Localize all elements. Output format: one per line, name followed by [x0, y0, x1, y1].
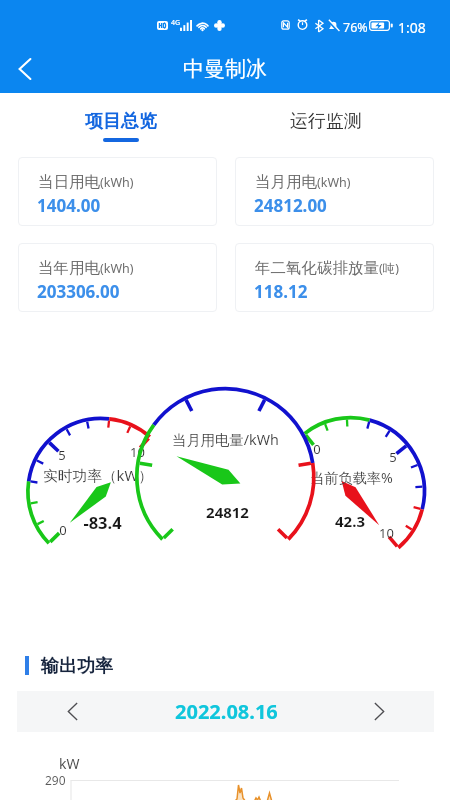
- staticText: 0: [59, 521, 67, 539]
- staticText: 24812.00: [254, 194, 327, 217]
- staticText: (kWh): [317, 174, 351, 191]
- staticText: 当日用电: [38, 172, 100, 192]
- staticText: (吨): [379, 260, 400, 277]
- button[interactable]: Back: [5, 49, 45, 89]
- staticText: 当年用电: [38, 258, 100, 278]
- staticText: 当月用电量/kWh: [172, 430, 279, 450]
- button[interactable]: Previous day: [17, 691, 127, 732]
- staticText: 输出功率: [41, 655, 113, 678]
- staticText: 76%: [343, 19, 368, 36]
- staticText: 10: [130, 443, 145, 461]
- button[interactable]: 项目总览: [18, 93, 223, 145]
- button[interactable]: 年二氧化碳排放量: [235, 243, 434, 312]
- staticText: 203306.00: [37, 280, 120, 303]
- staticText: kW: [59, 754, 80, 773]
- button[interactable]: 当月用电: [235, 157, 434, 226]
- staticText: 当前负载率%: [310, 468, 393, 487]
- staticText: (kWh): [100, 174, 134, 191]
- staticText: 42.3: [335, 511, 365, 531]
- staticText: 24812: [206, 502, 249, 522]
- staticText: -83.4: [83, 511, 122, 533]
- button[interactable]: Next day: [324, 691, 434, 732]
- staticText: 运行监测: [290, 110, 362, 133]
- staticText: 0: [313, 440, 321, 458]
- staticText: 5: [58, 446, 66, 464]
- staticText: 实时功率（kW）: [43, 465, 153, 485]
- staticText: 年二氧化碳排放量: [255, 258, 379, 278]
- staticText: 当月用电: [255, 172, 317, 192]
- button[interactable]: 运行监测: [223, 93, 428, 145]
- staticText: 2022.08.16: [175, 698, 278, 725]
- button[interactable]: 当年用电: [18, 243, 217, 312]
- staticText: 1:08: [398, 18, 426, 37]
- staticText: 10: [379, 524, 394, 542]
- staticText: 1404.00: [37, 194, 101, 217]
- staticText: (kWh): [100, 260, 134, 277]
- staticText: 4G: [171, 18, 181, 28]
- staticText: 中曼制冰: [183, 56, 267, 82]
- button[interactable]: 当日用电: [18, 157, 217, 226]
- staticText: 290: [45, 772, 66, 788]
- staticText: 118.12: [254, 280, 308, 303]
- staticText: 项目总览: [85, 110, 157, 133]
- staticText: 5: [389, 448, 397, 466]
